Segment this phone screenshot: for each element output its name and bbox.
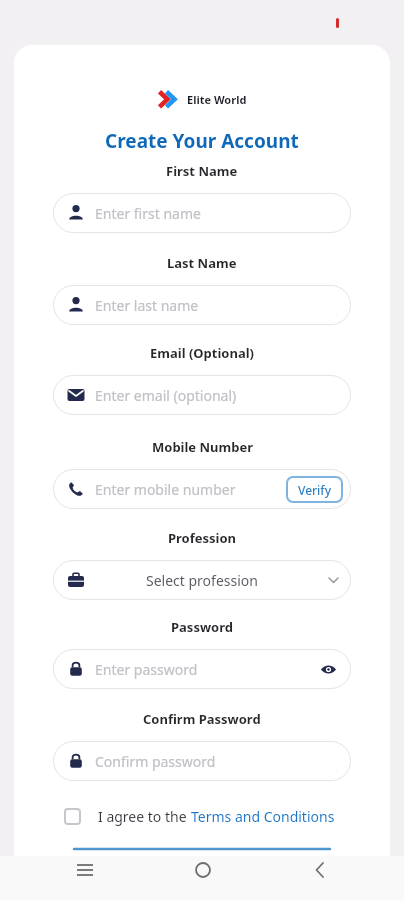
- button[interactable]: Enter password: [53, 649, 351, 689]
- button[interactable]: Enter last name: [53, 285, 351, 325]
- staticText: I agree to the: [98, 807, 191, 826]
- button[interactable]: [72, 847, 332, 856]
- staticText: Last Name: [167, 254, 237, 272]
- button[interactable]: Confirm password: [53, 741, 351, 781]
- staticText: Mobile Number: [152, 438, 253, 456]
- button[interactable]: Select profession: [53, 560, 351, 600]
- staticText: Enter first name: [95, 204, 201, 223]
- staticText: Password: [171, 618, 233, 636]
- staticText: Create Your Account: [105, 128, 299, 154]
- button[interactable]: Enter mobile number: [53, 469, 351, 509]
- staticText: Elite World: [187, 92, 247, 107]
- button[interactable]: [195, 862, 211, 878]
- staticText: Confirm password: [95, 752, 216, 771]
- staticText: Verify: [298, 482, 331, 498]
- button[interactable]: Enter email (optional): [53, 375, 351, 415]
- button[interactable]: [315, 862, 325, 878]
- staticText: Enter email (optional): [95, 386, 237, 405]
- staticText: Profession: [168, 529, 237, 547]
- staticText: Enter last name: [95, 296, 199, 315]
- staticText: Email (Optional): [150, 344, 254, 362]
- button[interactable]: I agree to the: [69, 807, 335, 826]
- staticText: Select profession: [146, 571, 258, 590]
- staticText: Terms and Conditions: [191, 807, 335, 826]
- staticText: Confirm Password: [143, 710, 261, 728]
- button[interactable]: Enter first name: [53, 193, 351, 233]
- staticText: Enter mobile number: [95, 480, 236, 499]
- button[interactable]: Verify: [286, 476, 343, 503]
- staticText: Enter password: [95, 660, 198, 679]
- button[interactable]: [77, 864, 93, 876]
- staticText: First Name: [166, 162, 238, 180]
